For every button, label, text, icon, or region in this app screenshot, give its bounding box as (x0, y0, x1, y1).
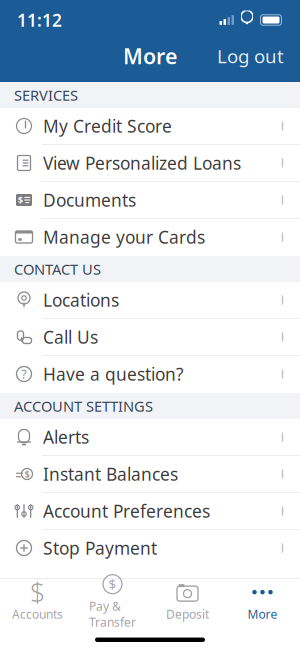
staticText: Manage your Cards (43, 225, 205, 248)
staticText: Documents (43, 188, 136, 211)
staticText: More (123, 42, 177, 70)
button[interactable]: View Personalized Loans (0, 145, 300, 182)
button[interactable]: More (225, 575, 300, 626)
button[interactable]: Account Preferences (0, 493, 300, 530)
staticText: $ (108, 575, 116, 593)
staticText: My Credit Score (43, 114, 172, 137)
button[interactable]: ? (0, 356, 300, 393)
staticText: Call Us (43, 325, 98, 348)
staticText: ? (21, 366, 26, 382)
staticText: SERVICES (14, 85, 78, 105)
button[interactable]: Locations (0, 282, 300, 319)
button[interactable]: $ (0, 575, 75, 626)
button[interactable]: Stop Payment (0, 530, 300, 567)
button[interactable]: My Credit Score (0, 108, 300, 145)
button[interactable]: Manage your Cards (0, 219, 300, 256)
staticText: View Personalized Loans (43, 151, 241, 174)
staticText: ACCOUNT SETTINGS (14, 396, 153, 416)
staticText: More (247, 606, 277, 622)
staticText: CONTACT US (14, 259, 101, 279)
staticText: Stop Payment (43, 536, 157, 559)
staticText: Log out (217, 44, 284, 68)
staticText: Have a question? (43, 362, 184, 385)
button[interactable]: Deposit (150, 575, 225, 626)
staticText: $ (24, 468, 29, 480)
staticText: Deposit (166, 606, 209, 622)
staticText: Pay & Transfer (89, 598, 136, 630)
staticText: Account Preferences (43, 499, 210, 522)
button[interactable]: $ (75, 567, 150, 634)
staticText: Alerts (43, 425, 89, 448)
button[interactable]: Log out (207, 36, 294, 76)
staticText: $ (30, 574, 45, 610)
staticText: Locations (43, 288, 119, 311)
staticText: 11:12 (17, 8, 62, 31)
staticText: Instant Balances (43, 462, 178, 485)
button[interactable]: $ (0, 456, 300, 493)
button[interactable]: $ (0, 182, 300, 219)
button[interactable]: Call Us (0, 319, 300, 356)
staticText: $ (18, 194, 23, 206)
button[interactable]: Alerts (0, 419, 300, 456)
staticText: Accounts (12, 606, 63, 622)
